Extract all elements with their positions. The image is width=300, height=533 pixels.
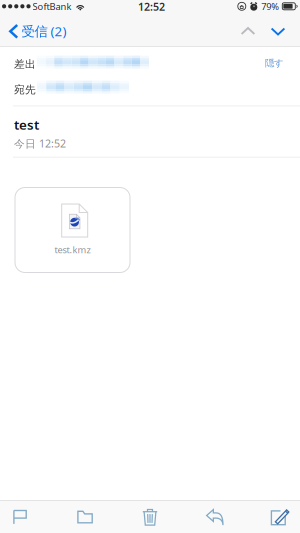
button[interactable]: Flag — [0, 501, 40, 533]
staticText: 差出 — [14, 57, 36, 71]
button[interactable]: test.kmz — [15, 187, 130, 272]
button[interactable]: Reply — [195, 501, 235, 533]
staticText: 12:52 — [138, 0, 165, 14]
button[interactable]: Compose — [260, 501, 300, 533]
button[interactable]: Next message — [263, 19, 293, 46]
staticText: 今日 12:52 — [14, 136, 66, 150]
staticText: SoftBank — [33, 0, 72, 13]
staticText: test — [14, 116, 39, 133]
button[interactable]: Move to folder — [65, 501, 105, 533]
staticText: 宛先 — [14, 83, 36, 96]
staticText: 79% — [261, 0, 279, 13]
button[interactable]: Previous message — [233, 19, 263, 46]
staticText: 隠す — [265, 57, 284, 69]
staticText: test.kmz — [54, 243, 90, 256]
button[interactable]: 隠す — [254, 51, 283, 72]
button[interactable]: 受信 (2) — [0, 19, 74, 46]
staticText: 受信 (2) — [21, 22, 66, 40]
button[interactable]: Delete — [130, 501, 170, 533]
